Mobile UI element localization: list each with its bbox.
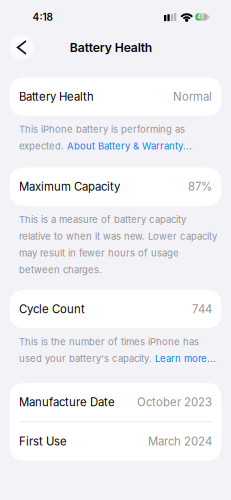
staticText: may result in fewer hours of usage: [19, 247, 179, 259]
button[interactable]: Back: [9, 35, 34, 60]
staticText: between charges.: [19, 264, 102, 276]
staticText: 744: [192, 302, 212, 316]
button[interactable]: Battery Health: [9, 77, 221, 116]
staticText: 87%: [188, 180, 212, 194]
button[interactable]: First Use: [9, 422, 221, 461]
staticText: 4:18: [32, 11, 52, 23]
staticText: Manufacture Date: [19, 395, 115, 409]
staticText: Battery Health: [19, 90, 94, 103]
staticText: Maximum Capacity: [19, 180, 120, 194]
staticText: expected.: [19, 140, 67, 152]
staticText: relative to when it was new. Lower capac…: [19, 231, 217, 242]
staticText: October 2023: [137, 395, 212, 409]
button[interactable]: Cycle Count: [9, 290, 221, 328]
staticText: Cycle Count: [19, 302, 85, 316]
staticText: 41: [197, 13, 203, 20]
staticText: used your battery's capacity.: [19, 353, 155, 364]
staticText: Learn more...: [155, 353, 216, 364]
staticText: First Use: [19, 435, 67, 448]
staticText: This iPhone battery is performing as: [19, 124, 185, 135]
staticText: Normal: [173, 90, 212, 103]
staticText: March 2024: [148, 435, 212, 448]
staticText: About Battery & Warranty...: [67, 140, 192, 152]
staticText: This is a measure of battery capacity: [19, 214, 186, 225]
staticText: Battery Health: [70, 40, 152, 55]
button[interactable]: Maximum Capacity: [9, 167, 221, 206]
staticText: This is the number of times iPhone has: [19, 336, 199, 348]
button[interactable]: Manufacture Date: [9, 383, 221, 421]
